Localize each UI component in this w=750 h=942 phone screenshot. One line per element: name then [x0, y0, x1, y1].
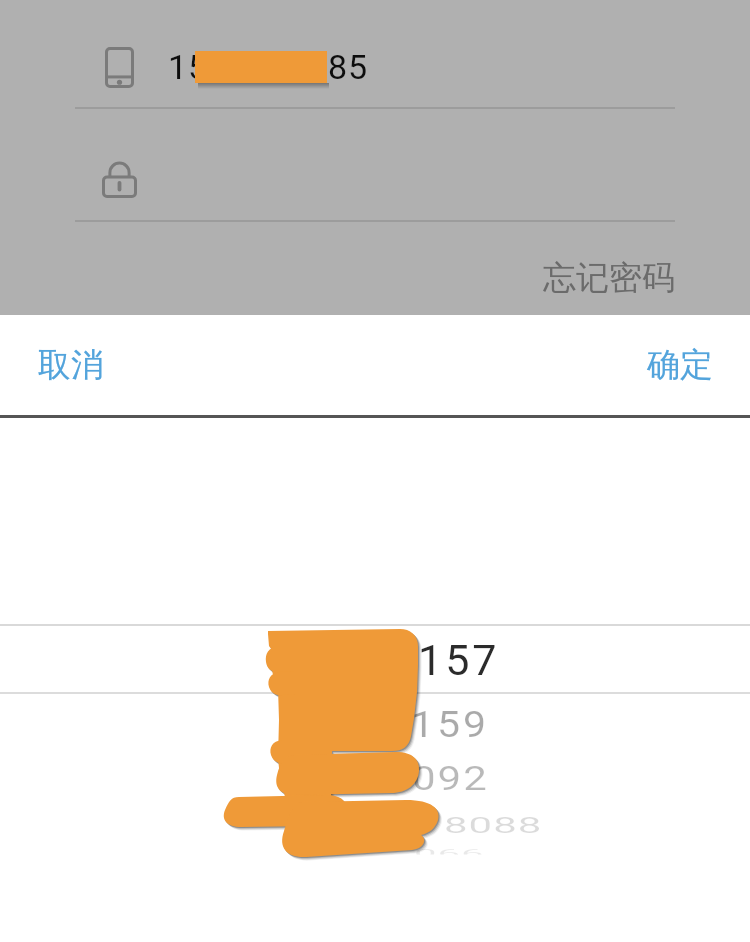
staticText: 092 — [412, 759, 489, 798]
staticText: 8088 — [444, 813, 543, 836]
button[interactable]: 确定 — [530, 315, 750, 415]
button[interactable]: 忘记密码 — [500, 247, 675, 309]
button[interactable]: 157 — [0, 626, 750, 694]
staticText: 157 — [418, 635, 500, 685]
staticText: 忘记密码 — [543, 257, 675, 299]
staticText: 066 — [414, 848, 485, 854]
staticText: 159 — [411, 702, 490, 746]
button[interactable]: 159 — [0, 696, 750, 751]
staticText: 85 — [328, 47, 369, 87]
button[interactable]: 066 — [0, 838, 750, 864]
staticText: 确定 — [647, 344, 713, 386]
staticText: 取消 — [38, 344, 104, 386]
button[interactable]: 取消 — [0, 315, 220, 415]
other: Password — [102, 161, 137, 198]
button[interactable]: 092 — [0, 752, 750, 804]
staticText: 15 — [168, 47, 209, 87]
button[interactable]: 8088 — [0, 802, 750, 847]
other: Phone number — [105, 47, 134, 88]
